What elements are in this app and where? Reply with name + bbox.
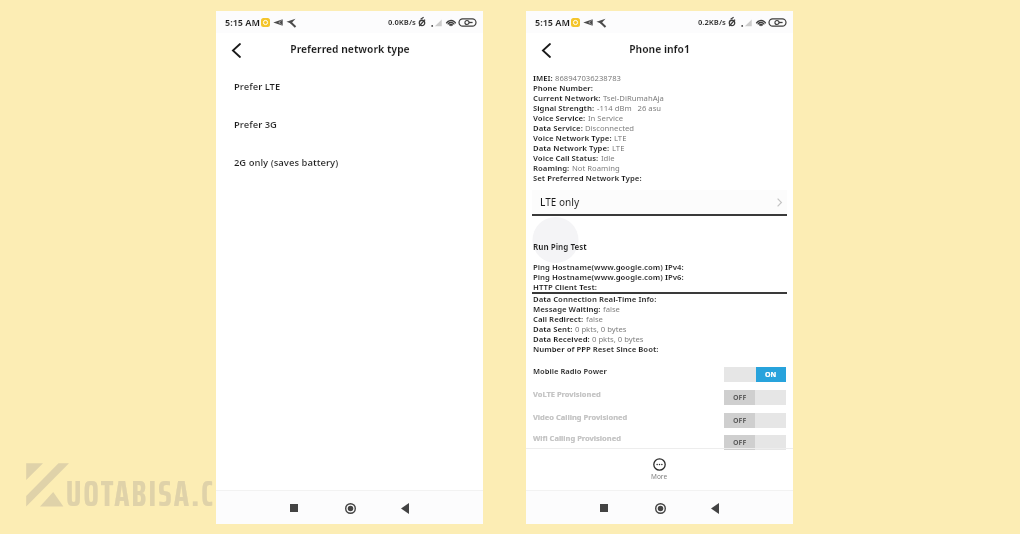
button[interactable]: Back [223, 37, 249, 63]
staticText: Set Preferred Network Type: [533, 173, 642, 183]
staticText: false [603, 304, 620, 314]
staticText: Idle [601, 153, 615, 163]
staticText: Phone info1 [629, 42, 690, 56]
staticText: VoLTE Provisioned [533, 389, 601, 399]
staticText: In Service [588, 113, 624, 123]
button[interactable]: Back [533, 37, 559, 63]
staticText: LTE [614, 133, 627, 143]
staticText: Data Sent: [533, 324, 573, 334]
staticText: Signal Strength: [533, 103, 595, 113]
staticText: 0 pkts, 0 bytes [592, 334, 644, 344]
button[interactable]: Back [704, 497, 726, 519]
staticText: Video Calling Provisioned [533, 412, 628, 422]
staticText: 0.0KB/s [388, 17, 416, 27]
staticText: HTTP Client Test: [533, 282, 597, 292]
staticText: ON [765, 370, 777, 380]
staticText: Message Waiting: [533, 304, 601, 314]
staticText: IMEI: [533, 73, 553, 83]
staticText: 5:15 AM [225, 16, 261, 28]
staticText: OFF [733, 393, 747, 403]
staticText: Number of PPP Reset Since Boot: [533, 344, 659, 354]
staticText: Voice Network Type: [533, 133, 612, 143]
staticText: Run Ping Test [533, 241, 587, 252]
staticText: -114 dBm 26 asu [597, 103, 662, 113]
staticText: Prefer 3G [234, 118, 277, 131]
button[interactable]: Home [339, 497, 361, 519]
staticText: Prefer LTE [234, 80, 281, 93]
staticText: Wifi Calling Provisioned [533, 433, 621, 443]
button[interactable]: LTE only [532, 190, 787, 214]
staticText: Tsel-DiRumahAja [603, 93, 664, 103]
button[interactable]: 2G only (saves battery) [216, 144, 483, 182]
staticText: 868947036238783 [555, 73, 621, 83]
staticText: More [651, 472, 668, 481]
staticText: Phone Number: [533, 83, 593, 93]
staticText: OFF [733, 416, 747, 426]
button[interactable]: Recents [283, 497, 305, 519]
staticText: 5:15 AM [535, 16, 571, 28]
staticText: Ping Hostname(www.google.com) IPv6: [533, 272, 684, 282]
button[interactable]: Wifi Calling Provisioned [526, 428, 793, 448]
button[interactable]: VoLTE Provisioned [526, 382, 793, 405]
staticText: OFF [733, 438, 747, 448]
staticText: Call Redirect: [533, 314, 584, 324]
button[interactable]: Mobile Radio Power [526, 359, 793, 382]
button[interactable]: Back [394, 497, 416, 519]
staticText: Current Network: [533, 93, 601, 103]
staticText: LTE only [540, 195, 580, 209]
button[interactable]: Prefer 3G [216, 106, 483, 144]
button[interactable]: More [526, 458, 793, 490]
staticText: Mobile Radio Power [533, 366, 607, 376]
staticText: Disconnected [585, 123, 634, 133]
staticText: 0.2KB/s [698, 17, 726, 27]
staticText: Voice Call Status: [533, 153, 599, 163]
staticText: Not Roaming [572, 163, 620, 173]
staticText: Voice Service: [533, 113, 586, 123]
staticText: Preferred network type [290, 42, 410, 56]
staticText: 0 pkts, 0 bytes [575, 324, 627, 334]
button[interactable]: Run Ping Test [532, 225, 596, 255]
staticText: Data Service: [533, 123, 583, 133]
button[interactable]: Video Calling Provisioned [526, 405, 793, 428]
button[interactable]: Recents [593, 497, 615, 519]
staticText: 2G only (saves battery) [234, 156, 339, 169]
staticText: Data Network Type: [533, 143, 610, 153]
staticText: UOTABISA.CO [66, 465, 233, 522]
staticText: LTE [612, 143, 625, 153]
button[interactable]: Home [649, 497, 671, 519]
staticText: Data Received: [533, 334, 590, 344]
staticText: Ping Hostname(www.google.com) IPv4: [533, 262, 684, 272]
staticText: Data Connection Real-Time Info: [533, 294, 657, 304]
staticText: false [586, 314, 603, 324]
button[interactable]: Prefer LTE [216, 68, 483, 106]
staticText: Roaming: [533, 163, 570, 173]
